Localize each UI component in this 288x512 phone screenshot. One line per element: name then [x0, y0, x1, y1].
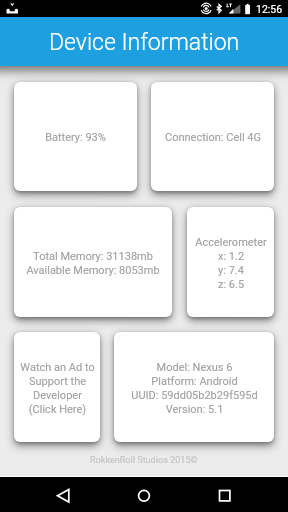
staticText: 12:56: [256, 3, 283, 15]
staticText: Device Information: [49, 29, 240, 56]
button[interactable]: Accelerometer x: 1.2 y: 7.4 z: 6.5: [187, 207, 274, 317]
button[interactable]: Back: [0, 477, 104, 512]
staticText: Model: Nexus 6 Platform: Android UUID: 5…: [131, 361, 258, 415]
button[interactable]: Watch an Ad to Support the Developer (Cl…: [14, 332, 100, 442]
staticText: Total Memory: 31138mb Available Memory: …: [26, 250, 160, 276]
button[interactable]: Connection: Cell 4G: [151, 82, 274, 191]
staticText: Watch an Ad to Support the Developer (Cl…: [20, 361, 95, 415]
button[interactable]: Home: [104, 477, 184, 512]
staticText: Accelerometer x: 1.2 y: 7.4 z: 6.5: [195, 236, 267, 290]
button[interactable]: Battery: 93%: [14, 82, 137, 191]
staticText: Battery: 93%: [45, 131, 106, 144]
button[interactable]: Recent apps: [184, 477, 288, 512]
staticText: Connection: Cell 4G: [165, 131, 261, 144]
staticText: RokkenRoll Studios 2015©: [90, 455, 198, 466]
button[interactable]: Total Memory: 31138mb Available Memory: …: [14, 207, 172, 317]
button[interactable]: Model: Nexus 6 Platform: Android UUID: 5…: [114, 332, 274, 442]
